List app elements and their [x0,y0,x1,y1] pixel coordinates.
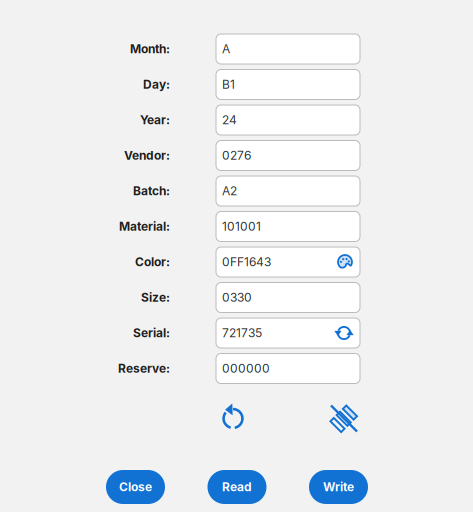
staticText: Vendor: [124,148,170,163]
staticText: Read [222,480,252,494]
staticText: Month: [130,42,170,56]
staticText: Day: [143,77,170,92]
staticText: Material: [119,219,170,234]
button[interactable]: Close [106,470,165,504]
staticText: Close [119,480,152,494]
staticText: 101001 [222,219,261,234]
staticText: 0276 [222,148,251,163]
staticText: A2 [222,184,237,198]
button[interactable]: Clear tag [330,404,358,432]
staticText: 0330 [222,290,252,305]
staticText: A [222,42,230,56]
staticText: 24 [222,113,237,127]
staticText: Serial: [133,326,170,340]
staticText: B1 [222,77,235,92]
button[interactable]: Read [207,470,266,504]
staticText: Reserve: [118,361,170,376]
staticText: 000000 [222,361,270,376]
button[interactable]: Generate serial [335,324,353,342]
button[interactable]: Reload [221,406,245,430]
staticText: Batch: [133,184,170,198]
staticText: 0FF1643 [222,255,271,269]
staticText: Size: [141,290,170,305]
staticText: Color: [135,255,170,269]
button[interactable]: Write [309,470,368,504]
staticText: 721735 [222,326,262,340]
staticText: Write [323,480,354,494]
button[interactable]: Pick colour [337,254,353,270]
staticText: Year: [140,113,170,127]
